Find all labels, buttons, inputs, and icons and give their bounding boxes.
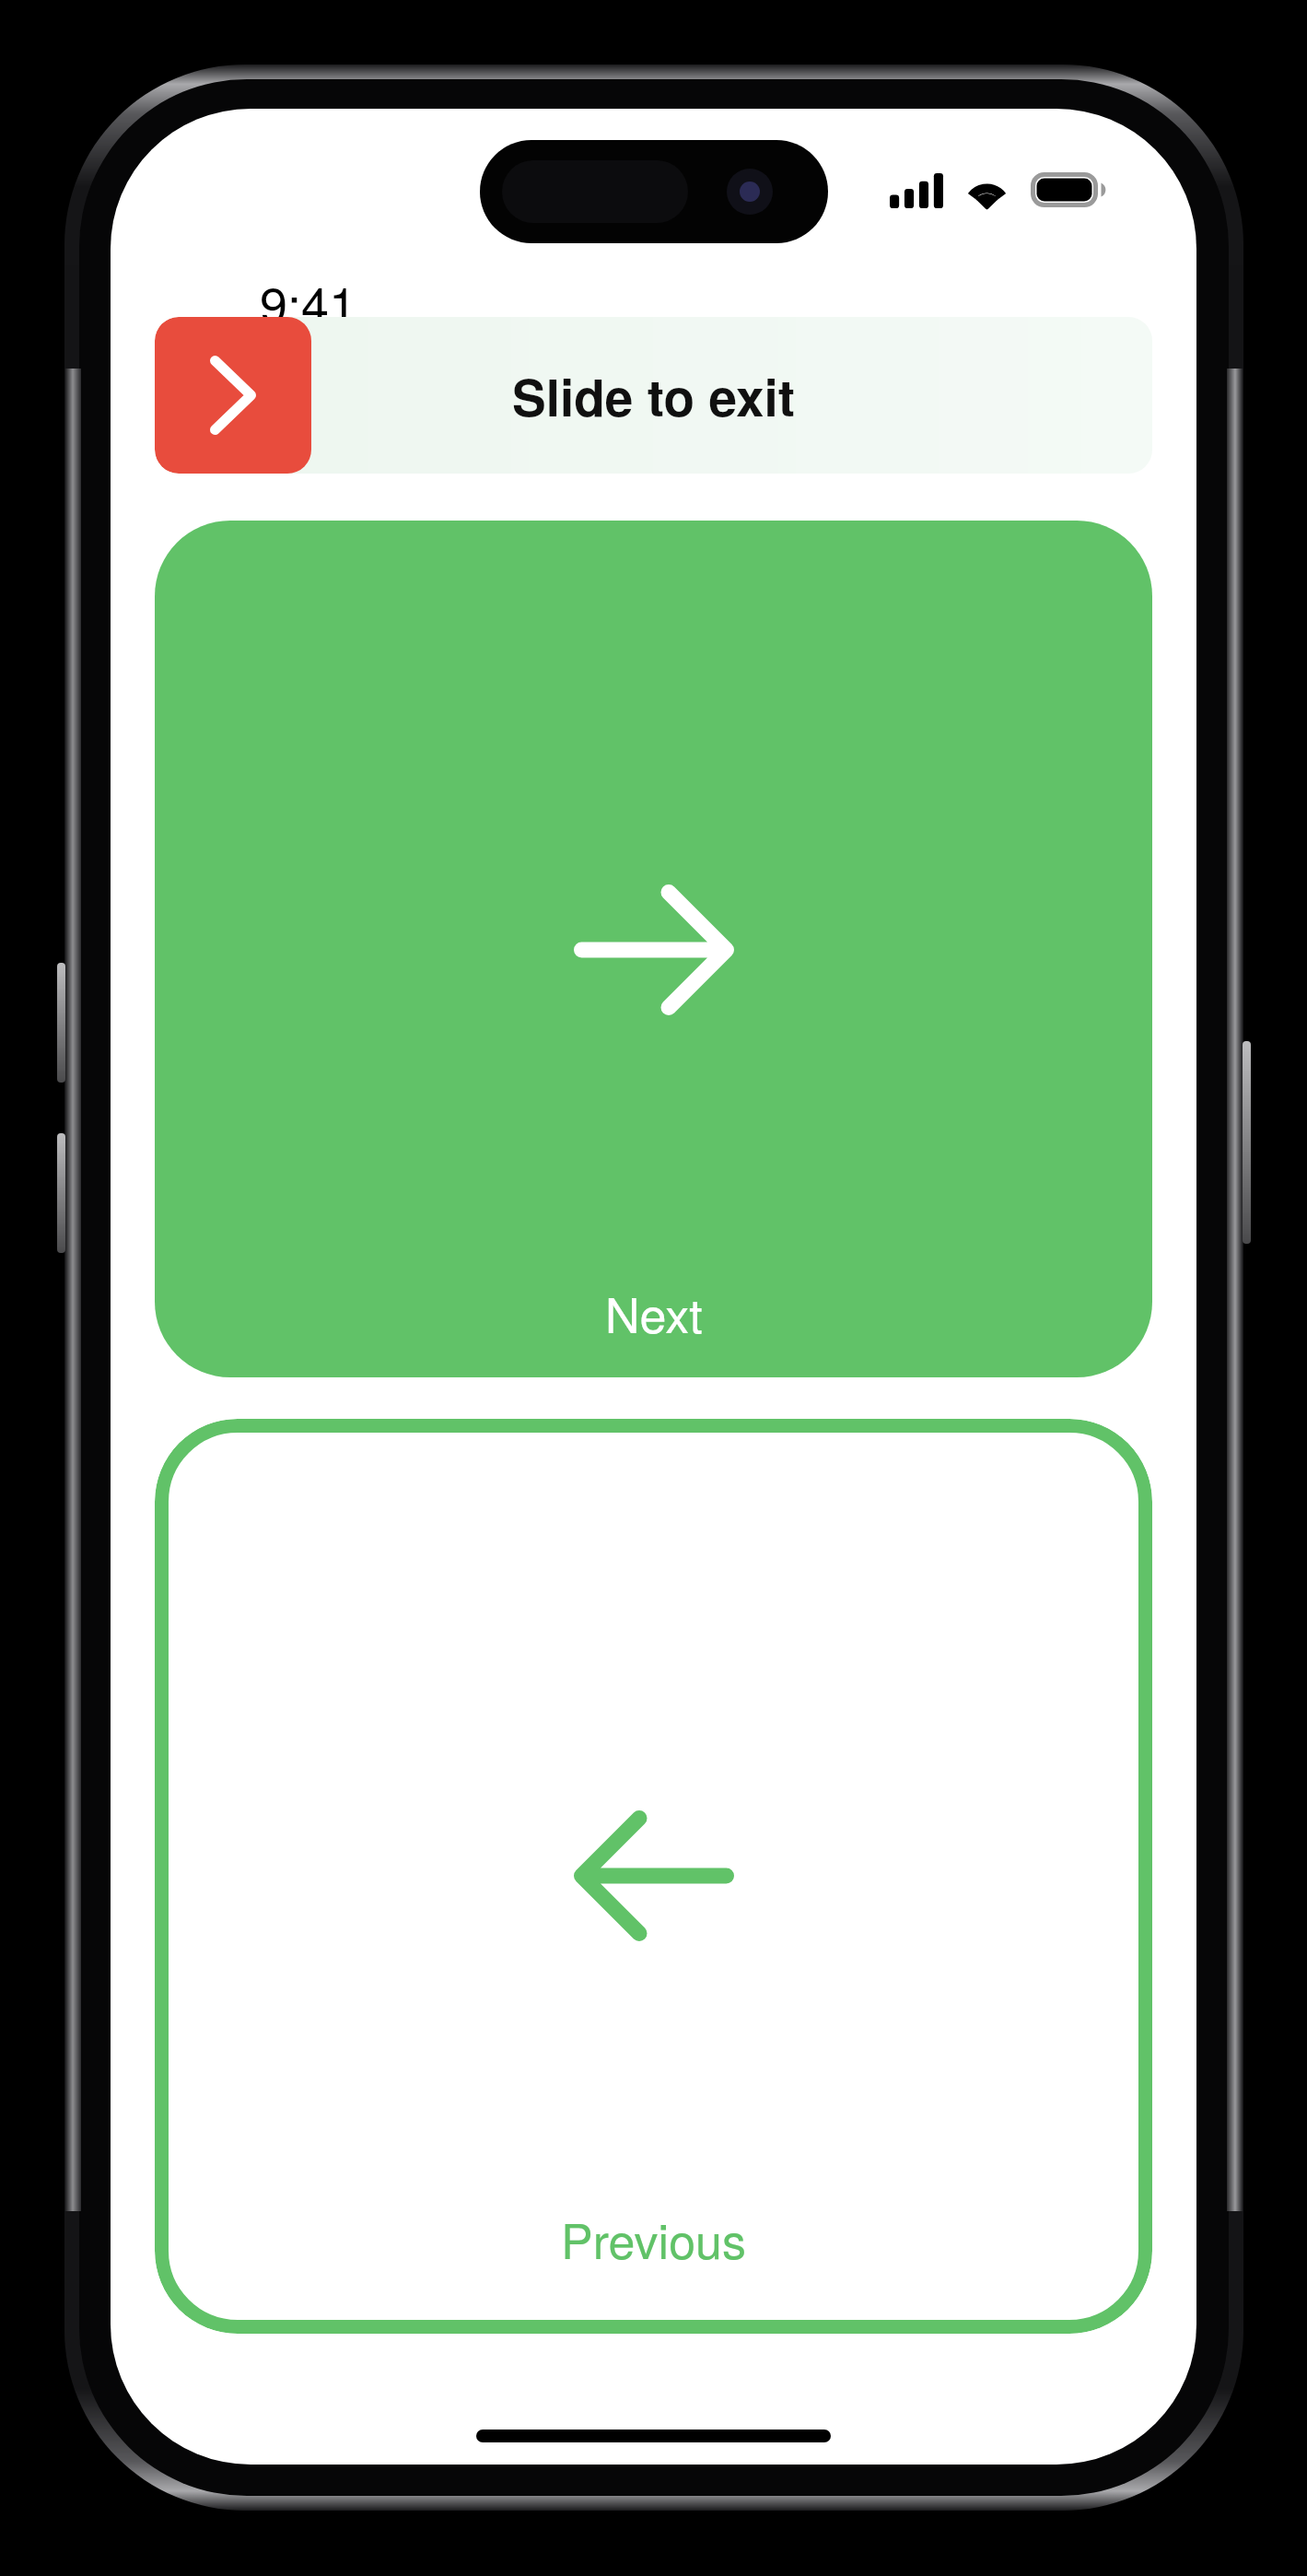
button[interactable]: Slide to exit	[155, 317, 1152, 474]
staticText: Slide to exit	[512, 359, 796, 432]
button[interactable]: Previous	[155, 1419, 1152, 2334]
staticText: Next	[605, 1278, 703, 1346]
staticText: Previous	[561, 2204, 746, 2272]
other: Next	[574, 884, 734, 1015]
other: Slide to exit	[155, 317, 311, 474]
staticText: 9:41	[260, 266, 357, 337]
other: Previous	[574, 1810, 734, 1941]
button[interactable]: Next	[155, 521, 1152, 1377]
